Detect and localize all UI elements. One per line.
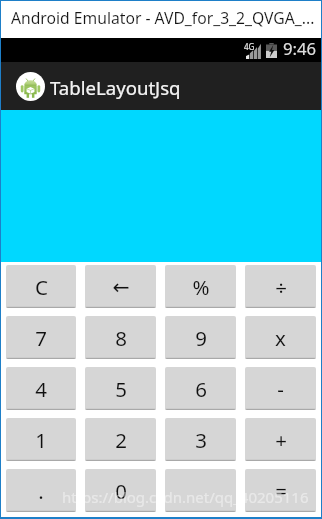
button[interactable]: = <box>245 469 316 512</box>
staticText: ÷ <box>275 273 287 301</box>
staticText: ← <box>112 275 130 299</box>
button[interactable]: - <box>245 367 316 410</box>
staticText: 7 <box>35 324 47 352</box>
button[interactable]: . <box>6 469 76 512</box>
button[interactable]: 3 <box>165 418 236 461</box>
staticText: TableLayoutJsq <box>50 75 181 100</box>
staticText: = <box>275 477 287 505</box>
staticText: - <box>277 375 284 403</box>
staticText: 5 <box>115 375 127 403</box>
staticText: 6 <box>195 375 207 403</box>
button[interactable]: 4 <box>6 367 76 410</box>
staticText: C <box>35 273 48 301</box>
button[interactable]: ÷ <box>245 265 316 308</box>
button[interactable]: 9 <box>165 316 236 359</box>
button[interactable]: ← <box>85 265 156 308</box>
staticText: . <box>38 477 44 505</box>
staticText: 8 <box>115 324 127 352</box>
button[interactable]: 6 <box>165 367 236 410</box>
staticText: 3 <box>195 426 207 454</box>
staticText: Android Emulator - AVD_for_3_2_QVGA_... <box>11 7 315 28</box>
button[interactable]: 5 <box>85 367 156 410</box>
button[interactable]: 7 <box>6 316 76 359</box>
button[interactable]: 2 <box>85 418 156 461</box>
button[interactable]: 0 <box>85 469 156 512</box>
button[interactable]: 8 <box>85 316 156 359</box>
staticText: + <box>275 426 287 454</box>
staticText: 4 <box>35 375 47 403</box>
button[interactable]: 1 <box>6 418 76 461</box>
staticText: 9:46 <box>283 37 317 60</box>
button[interactable]: blank key <box>165 469 236 512</box>
staticText: https://blog.csdn.net/qq_40205116 <box>62 487 309 507</box>
button[interactable]: + <box>245 418 316 461</box>
staticText: % <box>192 273 210 301</box>
staticText: x <box>275 324 286 352</box>
staticText: 9 <box>195 324 207 352</box>
staticText: 1 <box>35 426 47 454</box>
staticText: 2 <box>115 426 127 454</box>
button[interactable]: C <box>6 265 76 308</box>
staticText: 0 <box>115 477 127 505</box>
staticText: 4G <box>244 41 255 52</box>
button[interactable]: % <box>165 265 236 308</box>
button[interactable]: x <box>245 316 316 359</box>
